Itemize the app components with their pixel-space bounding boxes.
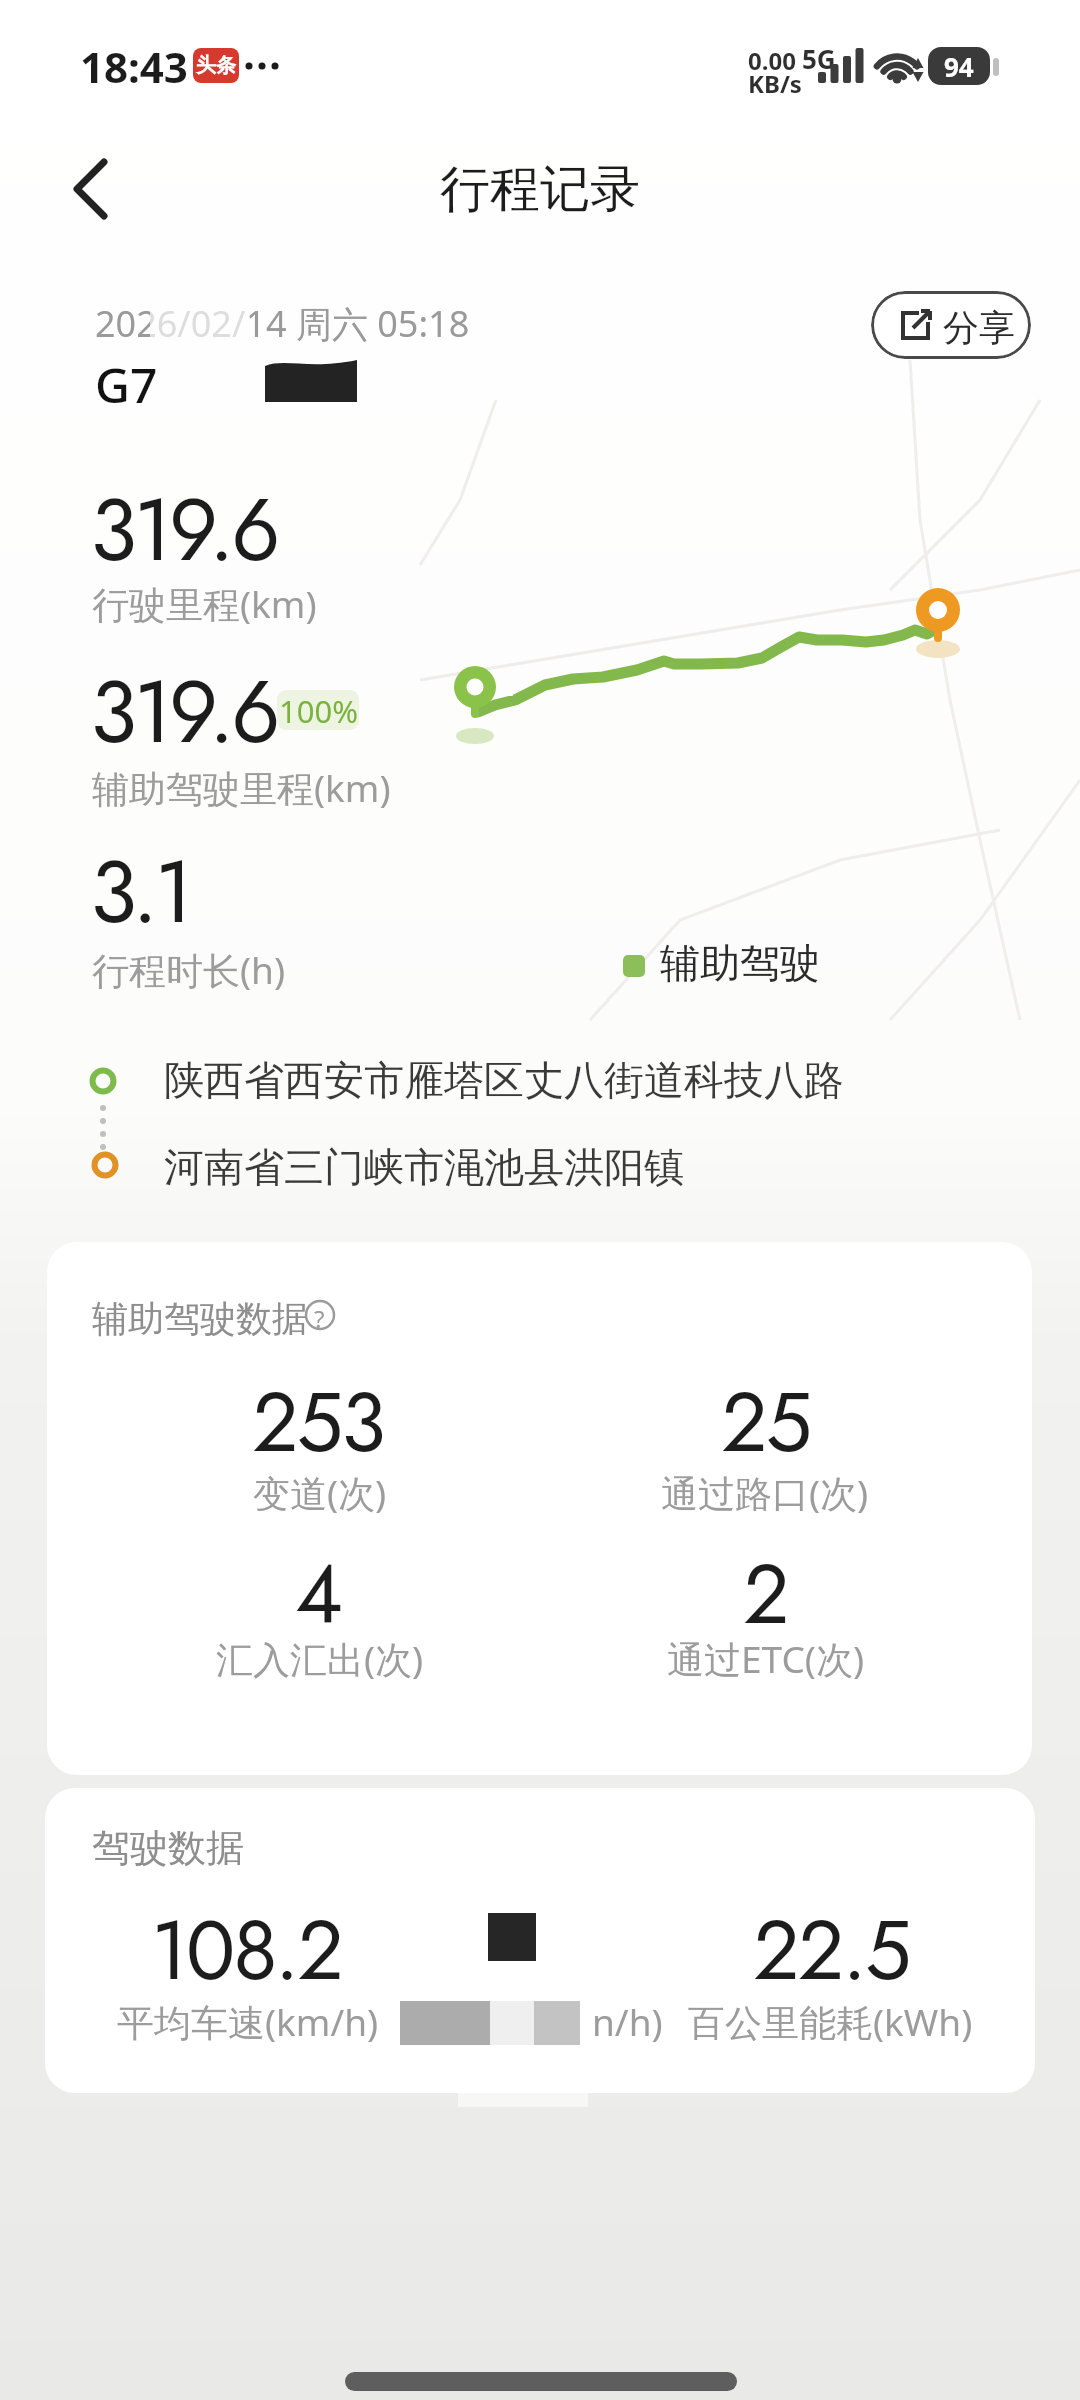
staticText: 319.6 bbox=[90, 468, 278, 592]
staticText: KB/s bbox=[748, 67, 802, 100]
staticText: n/h) bbox=[592, 1996, 663, 2046]
staticText: 0.00 bbox=[748, 44, 796, 77]
button[interactable] bbox=[305, 1300, 337, 1332]
staticText: 319.6 bbox=[90, 650, 278, 774]
staticText: 4 bbox=[295, 1535, 341, 1653]
button[interactable] bbox=[58, 148, 138, 228]
staticText: 253 bbox=[252, 1363, 384, 1481]
staticText: 行程记录 bbox=[440, 158, 640, 221]
staticText: 2026/02/14 周六 05:18 bbox=[95, 299, 470, 348]
staticText: 辅助驾驶里程(km) bbox=[92, 762, 391, 813]
staticText: 分享 bbox=[943, 305, 1015, 350]
staticText: 辅助驾驶 bbox=[660, 938, 820, 988]
staticText: ? bbox=[314, 1302, 325, 1335]
staticText: 108.2 bbox=[151, 1891, 342, 2009]
staticText: 行驶里程(km) bbox=[92, 578, 317, 629]
staticText: 18:43 bbox=[80, 38, 188, 95]
staticText: 变道(次) bbox=[253, 1467, 387, 1518]
staticText: 河南省三门峡市渑池县洪阳镇 bbox=[164, 1142, 684, 1192]
staticText: 头条 bbox=[196, 53, 236, 78]
staticText: 百公里能耗(kWh) bbox=[688, 1996, 973, 2047]
staticText: 5G bbox=[802, 41, 836, 76]
staticText: 辅助驾驶数据 bbox=[92, 1296, 308, 1341]
staticText: 22.5 bbox=[753, 1891, 910, 2009]
staticText: 通过路口(次) bbox=[661, 1467, 869, 1518]
staticText: 100% bbox=[279, 690, 358, 730]
staticText: G7 bbox=[95, 352, 158, 417]
staticText: 陕西省西安市雁塔区丈八街道科技八路 bbox=[164, 1055, 844, 1105]
staticText: 平均车速(km/h) bbox=[117, 1996, 379, 2047]
staticText: 通过ETC(次) bbox=[667, 1633, 864, 1684]
staticText: 25 bbox=[721, 1363, 810, 1481]
staticText: 94 bbox=[944, 49, 974, 84]
button[interactable]: 分享 bbox=[871, 291, 1031, 359]
staticText: 驾驶数据 bbox=[92, 1824, 244, 1872]
staticText: 汇入汇出(次) bbox=[216, 1633, 424, 1684]
staticText: 3.1 bbox=[90, 830, 190, 954]
staticText: 行程时长(h) bbox=[92, 944, 286, 995]
staticText: 2 bbox=[743, 1535, 788, 1653]
